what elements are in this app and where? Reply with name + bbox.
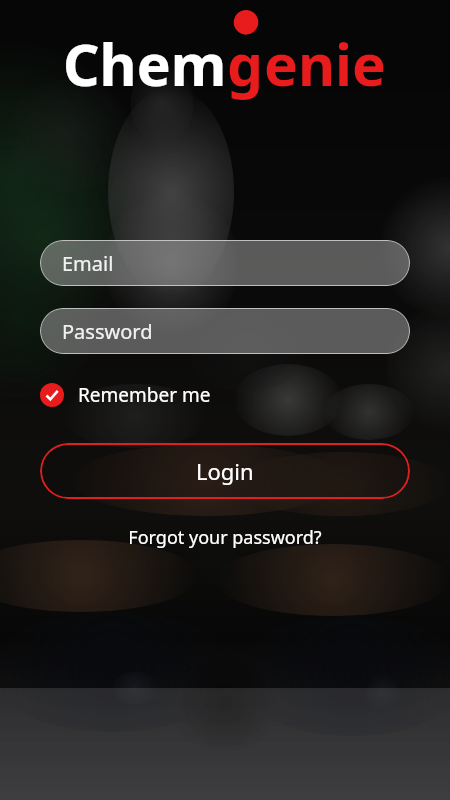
- staticText: Password: [62, 318, 153, 345]
- staticText: Remember me: [78, 382, 211, 408]
- staticText: Forgot your password?: [128, 525, 322, 550]
- button[interactable]: Email: [40, 240, 410, 286]
- button[interactable]: Forgot your password?: [118, 521, 332, 554]
- staticText: g: [227, 25, 264, 103]
- staticText: Login: [196, 456, 254, 486]
- staticText: Chem: [63, 25, 227, 103]
- button[interactable]: Remember me: [38, 378, 213, 412]
- button[interactable]: Login: [40, 443, 410, 499]
- staticText: Email: [62, 250, 114, 277]
- button[interactable]: Password: [40, 308, 410, 354]
- staticText: enie: [264, 25, 387, 103]
